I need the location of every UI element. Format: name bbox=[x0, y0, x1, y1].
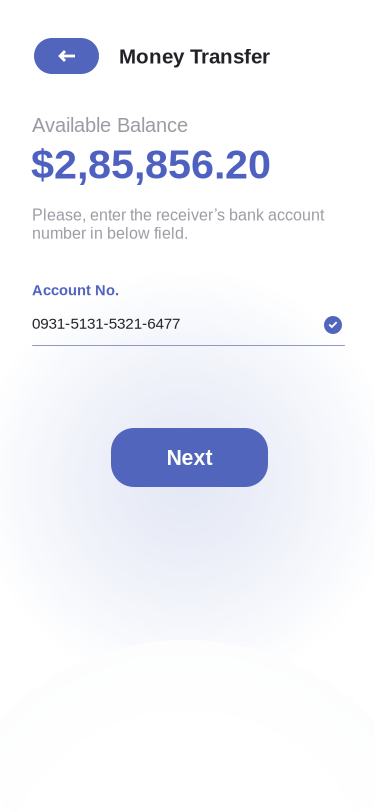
staticText: $2,85,856.20 bbox=[31, 141, 271, 187]
staticText: Please, enter the receiver’s bank accoun… bbox=[32, 206, 324, 242]
staticText: Money Transfer bbox=[119, 45, 270, 68]
staticText: Available Balance bbox=[32, 114, 188, 136]
staticText: Account No. bbox=[32, 282, 119, 298]
button[interactable]: Next bbox=[111, 428, 268, 487]
staticText: Next bbox=[166, 446, 212, 469]
staticText: 0931-5131-5321-6477 bbox=[32, 315, 180, 332]
button[interactable]: Back bbox=[34, 38, 99, 74]
